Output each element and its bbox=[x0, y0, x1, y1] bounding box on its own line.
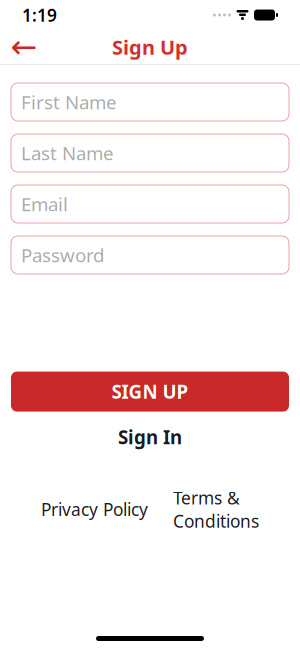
button[interactable]: Privacy Policy bbox=[41, 492, 148, 527]
staticText: Email bbox=[21, 192, 68, 216]
button[interactable]: SIGN UP bbox=[11, 372, 289, 412]
staticText: 1:19 bbox=[22, 3, 57, 26]
staticText: SIGN UP bbox=[111, 379, 188, 404]
staticText: Sign In bbox=[118, 425, 182, 449]
button[interactable]: Terms & Conditions bbox=[173, 480, 259, 538]
staticText: Privacy Policy bbox=[41, 498, 148, 521]
staticText: First Name bbox=[21, 90, 117, 114]
staticText: Sign Up bbox=[112, 34, 188, 60]
button[interactable]: Back bbox=[4, 30, 44, 64]
staticText: ← bbox=[10, 29, 37, 65]
staticText: Terms & Conditions bbox=[173, 486, 259, 532]
staticText: Password bbox=[21, 243, 104, 267]
staticText: Last Name bbox=[21, 141, 114, 165]
button[interactable]: Sign In bbox=[102, 419, 198, 455]
